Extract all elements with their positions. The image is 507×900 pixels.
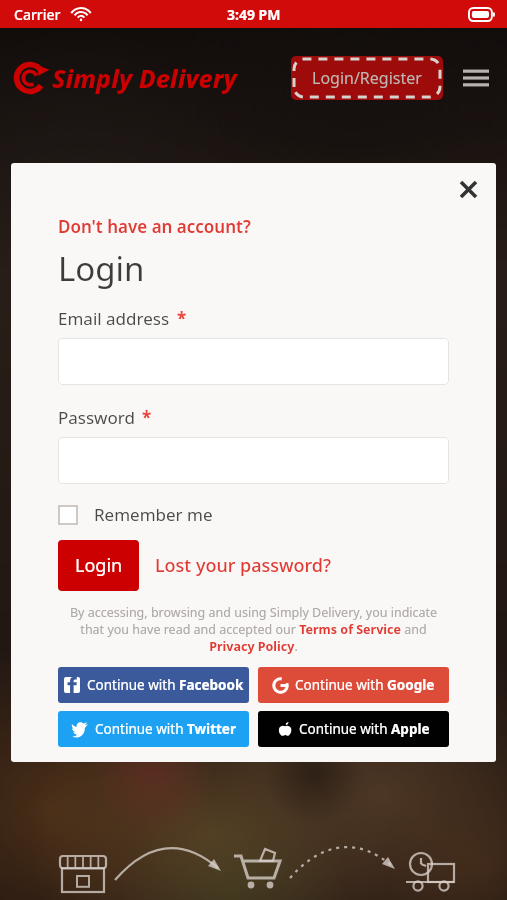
staticText: * [142, 406, 152, 429]
staticText: Don't have an account? [58, 215, 251, 238]
staticText: Carrier [14, 5, 61, 24]
staticText: Login/Register [312, 67, 422, 89]
staticText: Password [58, 406, 135, 429]
staticText: Login [58, 246, 145, 291]
button[interactable]: Remember me [58, 503, 213, 526]
staticText: By accessing, browsing and using Simply … [58, 604, 449, 655]
button[interactable]: Login [58, 540, 139, 591]
staticText: Simply Delivery [52, 61, 237, 95]
staticText: Email address [58, 307, 170, 330]
button[interactable]: Don't have an account? [58, 215, 251, 238]
staticText: Continue with Apple [299, 720, 430, 738]
staticText: Remember me [94, 503, 213, 526]
staticText: Login [75, 553, 123, 578]
button[interactable]: Login/Register [291, 56, 443, 100]
button[interactable]: Continue with Apple [258, 711, 449, 747]
button[interactable]: Continue with Twitter [58, 711, 249, 747]
staticText: Continue with Google [295, 676, 435, 694]
staticText: * [177, 307, 187, 330]
staticText: Lost your password? [155, 553, 331, 578]
button[interactable]: Continue with Google [258, 667, 449, 703]
button[interactable]: Lost your password? [155, 553, 331, 578]
staticText: Continue with Twitter [95, 720, 236, 738]
button[interactable]: Continue with Facebook [58, 667, 249, 703]
staticText: 3:49 PM [227, 5, 281, 24]
button[interactable] [58, 338, 449, 385]
button[interactable] [58, 437, 449, 484]
button[interactable]: Close [450, 171, 486, 207]
button[interactable]: Menu [459, 61, 493, 95]
staticText: Continue with Facebook [87, 676, 244, 694]
